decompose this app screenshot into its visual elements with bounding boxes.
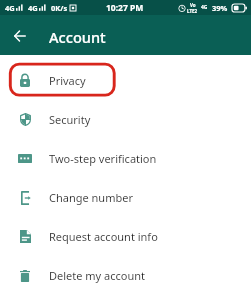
staticText: Account bbox=[49, 27, 106, 47]
staticText: Privacy bbox=[49, 73, 86, 88]
staticText: 4G bbox=[5, 3, 15, 13]
button[interactable]: Request account info bbox=[0, 217, 251, 256]
staticText: 39% bbox=[212, 3, 228, 13]
staticText: 10:27 PM bbox=[106, 2, 144, 14]
button[interactable]: Delete my account bbox=[0, 256, 251, 288]
staticText: Change number bbox=[49, 190, 133, 205]
staticText: Two-step verification bbox=[49, 151, 157, 166]
button[interactable]: Security bbox=[0, 100, 251, 139]
staticText: LTE2 bbox=[187, 8, 198, 14]
staticText: 4G bbox=[201, 4, 208, 11]
button[interactable]: Two-step verification bbox=[0, 139, 251, 178]
button[interactable]: Privacy bbox=[0, 61, 251, 100]
staticText: 0K/s bbox=[51, 3, 68, 13]
button[interactable]: Back bbox=[6, 22, 34, 50]
staticText: Delete my account bbox=[49, 268, 146, 283]
staticText: Vo bbox=[190, 2, 196, 8]
staticText: Security bbox=[49, 112, 91, 127]
staticText: 4G bbox=[28, 3, 38, 13]
button[interactable]: Change number bbox=[0, 178, 251, 217]
staticText: Request account info bbox=[49, 229, 158, 244]
